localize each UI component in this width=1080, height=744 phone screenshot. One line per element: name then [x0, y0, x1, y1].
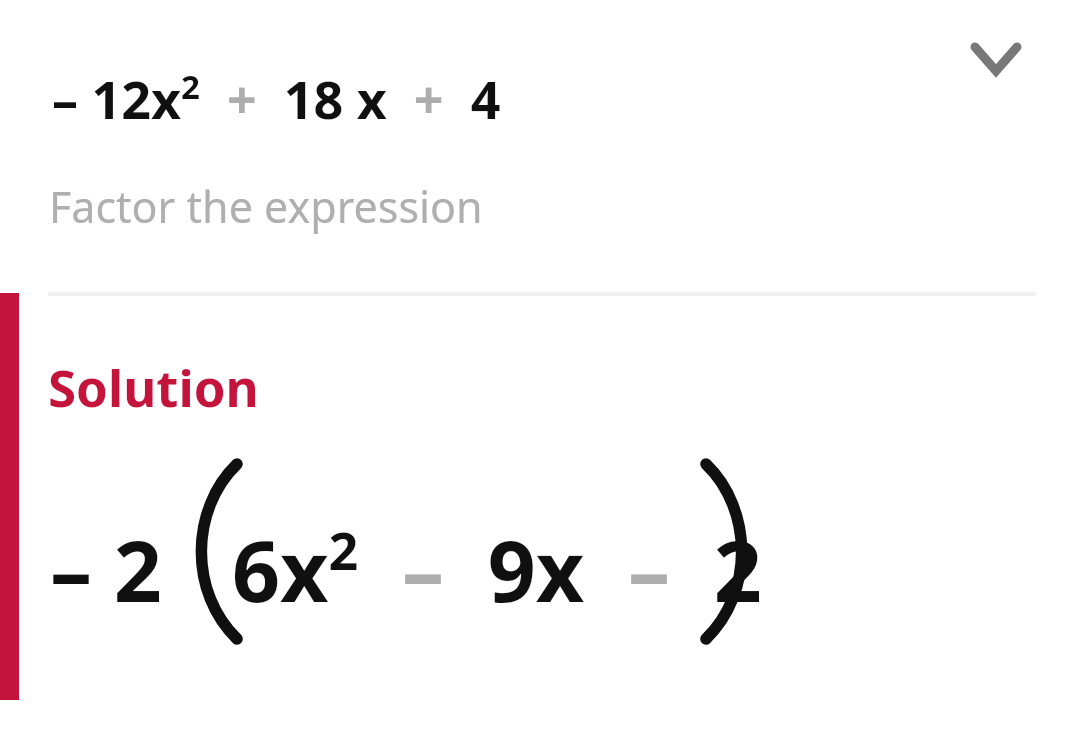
- button[interactable]: Collapse: [949, 11, 1043, 105]
- staticText: Factor the expression: [49, 177, 483, 236]
- staticText: – 12x2 + 18 x + 4: [52, 63, 501, 134]
- staticText: Solution: [48, 352, 259, 421]
- staticText: 6x2 – 9x – 2: [232, 512, 762, 626]
- staticText: – 2: [50, 512, 162, 626]
